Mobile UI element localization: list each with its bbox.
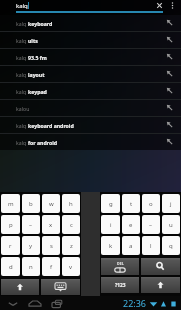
button[interactable]: – bbox=[22, 215, 40, 234]
button[interactable]: s bbox=[42, 236, 60, 255]
button[interactable]: Delete bbox=[101, 258, 139, 275]
button[interactable]: u bbox=[162, 215, 180, 234]
button[interactable]: Insert suggestion bbox=[162, 83, 178, 99]
button[interactable]: kalq bbox=[0, 117, 181, 133]
staticText: l bbox=[150, 242, 152, 250]
button[interactable]: Insert suggestion bbox=[162, 66, 178, 82]
button[interactable]: o bbox=[142, 194, 160, 213]
button[interactable]: Insert suggestion bbox=[162, 134, 178, 150]
button[interactable]: q bbox=[162, 236, 180, 255]
button[interactable]: a bbox=[122, 236, 140, 255]
staticText: kalq bbox=[16, 2, 28, 10]
button[interactable]: Insert suggestion bbox=[162, 100, 178, 116]
button[interactable]: kalq bbox=[0, 49, 181, 65]
button[interactable]: z bbox=[62, 236, 80, 255]
staticText: kalq bbox=[16, 71, 28, 78]
button[interactable]: f bbox=[42, 257, 60, 276]
staticText: j bbox=[170, 200, 172, 208]
button[interactable]: y bbox=[22, 236, 40, 255]
button[interactable]: h bbox=[62, 194, 80, 213]
staticText: kalq bbox=[16, 54, 28, 61]
button[interactable]: r bbox=[1, 236, 20, 255]
staticText: ults bbox=[28, 37, 38, 44]
staticText: n bbox=[29, 263, 33, 271]
staticText: for android bbox=[28, 139, 57, 146]
staticText: s bbox=[50, 242, 53, 250]
button[interactable]: kalq bbox=[0, 66, 181, 82]
staticText: r bbox=[9, 242, 12, 250]
staticText: e bbox=[129, 221, 133, 229]
staticText: y bbox=[29, 242, 33, 250]
staticText: q bbox=[169, 242, 173, 250]
staticText: f bbox=[50, 263, 53, 271]
button[interactable]: kalq bbox=[0, 134, 181, 150]
button[interactable]: j bbox=[162, 194, 180, 213]
staticText: k bbox=[109, 242, 113, 250]
staticText: b bbox=[29, 200, 33, 208]
button[interactable]: Insert suggestion bbox=[162, 49, 178, 65]
button[interactable]: x bbox=[42, 215, 60, 234]
staticText: kalou bbox=[16, 105, 30, 112]
staticText: z bbox=[70, 242, 73, 250]
button[interactable]: v bbox=[62, 257, 80, 276]
button[interactable]: Shift bbox=[141, 277, 180, 293]
staticText: keyboard bbox=[28, 20, 53, 27]
staticText: – bbox=[149, 221, 153, 229]
staticText: p bbox=[9, 221, 13, 229]
button[interactable]: More options bbox=[167, 0, 178, 11]
staticText: g bbox=[109, 200, 113, 208]
button[interactable]: d bbox=[1, 257, 20, 276]
button[interactable]: Switch keyboard bbox=[41, 279, 80, 295]
button[interactable]: Symbols bbox=[101, 277, 139, 293]
staticText: x bbox=[49, 221, 53, 229]
button[interactable]: Search bbox=[141, 258, 180, 275]
button[interactable]: i bbox=[101, 215, 120, 234]
staticText: a bbox=[129, 242, 133, 250]
button[interactable]: p bbox=[1, 215, 20, 234]
button[interactable]: g bbox=[101, 194, 120, 213]
button[interactable]: Shift bbox=[1, 279, 39, 295]
staticText: kalq bbox=[16, 139, 28, 146]
staticText: kalq bbox=[16, 122, 28, 129]
button[interactable]: kalq bbox=[0, 83, 181, 99]
button[interactable]: Back bbox=[2, 296, 23, 310]
staticText: d bbox=[9, 263, 13, 271]
staticText: v bbox=[69, 263, 73, 271]
button[interactable]: e bbox=[122, 215, 140, 234]
staticText: ?123 bbox=[115, 282, 126, 289]
staticText: DEL bbox=[117, 261, 124, 266]
staticText: w bbox=[49, 200, 54, 208]
staticText: kalq bbox=[16, 88, 28, 95]
button[interactable]: c bbox=[62, 215, 80, 234]
button[interactable]: kalou bbox=[0, 100, 181, 116]
staticText: layout bbox=[28, 71, 45, 78]
button[interactable]: k bbox=[101, 236, 120, 255]
button[interactable]: t bbox=[122, 194, 140, 213]
button[interactable]: kalq bbox=[0, 32, 181, 48]
button[interactable]: w bbox=[42, 194, 60, 213]
staticText: – bbox=[29, 221, 33, 229]
staticText: i bbox=[110, 221, 112, 229]
button[interactable]: m bbox=[1, 194, 20, 213]
staticText: m bbox=[8, 200, 14, 208]
button[interactable]: kalq bbox=[0, 15, 181, 31]
button[interactable]: b bbox=[22, 194, 40, 213]
staticText: o bbox=[149, 200, 153, 208]
staticText: 22:36 bbox=[123, 297, 147, 309]
staticText: t bbox=[130, 200, 133, 208]
button[interactable]: n bbox=[22, 257, 40, 276]
staticText: 93.5 fm bbox=[28, 54, 47, 61]
button[interactable]: – bbox=[142, 215, 160, 234]
button[interactable]: Clear query bbox=[154, 0, 165, 11]
button[interactable]: Insert suggestion bbox=[162, 117, 178, 133]
staticText: kalq bbox=[16, 37, 28, 44]
button[interactable]: Insert suggestion bbox=[162, 32, 178, 48]
button[interactable]: Home bbox=[24, 296, 45, 310]
button[interactable]: Recents bbox=[46, 296, 67, 310]
staticText: u bbox=[169, 221, 173, 229]
staticText: c bbox=[70, 221, 73, 229]
staticText: keypad bbox=[28, 88, 47, 95]
staticText: kalq bbox=[16, 20, 28, 27]
button[interactable]: l bbox=[142, 236, 160, 255]
button[interactable]: Insert suggestion bbox=[162, 15, 178, 31]
